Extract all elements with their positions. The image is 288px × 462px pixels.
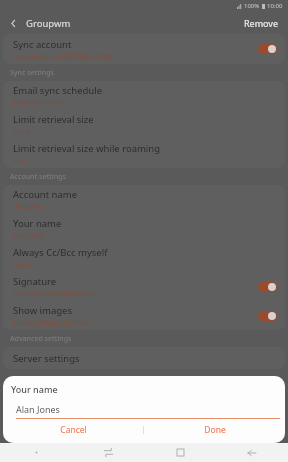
button[interactable]: Remove (235, 13, 288, 33)
button[interactable]: Always Cc/Bcc myself (3, 243, 285, 272)
button[interactable]: Done (144, 419, 285, 441)
button[interactable]: Account name (3, 185, 285, 214)
button[interactable]: Signature (3, 272, 285, 301)
staticText: Last synced on 27/05/2019 10:00 (13, 52, 113, 61)
button[interactable]: Back (216, 443, 288, 462)
button[interactable]: Your name (3, 214, 285, 243)
button[interactable]: Limit retrieval size while roaming (3, 139, 285, 168)
staticText: Cancel (60, 424, 87, 436)
staticText: 100% (244, 2, 260, 10)
staticText: Sync settings (10, 68, 54, 78)
staticText: Server settings (13, 352, 80, 365)
staticText: Show all images in emails. (13, 318, 93, 327)
staticText: Sync account (13, 38, 72, 51)
staticText: None (13, 260, 30, 269)
staticText: Your name (11, 383, 58, 395)
staticText: Email sync schedule (13, 84, 103, 97)
staticText: Limit retrieval size (13, 113, 94, 126)
button[interactable]: Email sync schedule (3, 81, 285, 110)
button[interactable]: Show images toggle (258, 311, 277, 321)
button[interactable]: Sync account (3, 34, 285, 64)
staticText: 2 KB (13, 156, 27, 165)
button[interactable]: Recents (72, 443, 144, 462)
staticText: Account settings (10, 172, 66, 182)
button[interactable]: Navigate up (0, 12, 26, 34)
staticText: Remove (244, 17, 279, 29)
staticText: Sent from Samsung tablet. (13, 289, 95, 298)
staticText: 10:00 (267, 2, 283, 10)
button[interactable]: Limit retrieval size (3, 110, 285, 139)
staticText: Show images (13, 304, 72, 317)
staticText: Always Cc/Bcc myself (13, 246, 108, 259)
button[interactable]: Home (144, 443, 216, 462)
staticText: Alan Jones (13, 231, 45, 240)
button[interactable]: Sync account toggle (258, 44, 277, 54)
staticText: Limit retrieval size while roaming (13, 142, 161, 155)
button[interactable]: Show images (3, 301, 285, 330)
staticText: Your name (13, 217, 62, 230)
staticText: Advanced settings (10, 334, 72, 344)
staticText: Done (204, 424, 226, 436)
button[interactable]: Server settings (3, 347, 285, 369)
button[interactable]: Signature toggle (258, 282, 277, 292)
button[interactable]: Cancel (3, 419, 143, 441)
staticText: Groupwm (26, 17, 71, 30)
staticText: Signature (13, 275, 57, 288)
staticText: 50 KB (13, 127, 31, 136)
staticText: Groupwm (13, 202, 44, 211)
staticText: Account name (13, 188, 78, 201)
staticText: Every 15 minutes (13, 98, 66, 107)
staticText: Alan Jones (16, 403, 60, 415)
